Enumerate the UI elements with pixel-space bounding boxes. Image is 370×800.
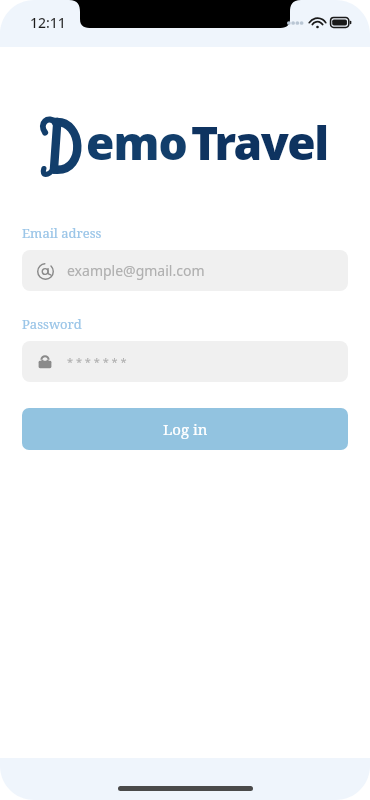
staticText: Password: [22, 315, 82, 333]
staticText: Travel: [191, 111, 328, 174]
button[interactable]: Password field: [22, 341, 348, 382]
staticText: Email adress: [22, 224, 102, 242]
button[interactable]: Log in: [22, 408, 348, 450]
staticText: * * * * * * *: [67, 354, 127, 369]
staticText: Log in: [163, 419, 208, 439]
staticText: 12:11: [30, 13, 66, 32]
staticText: example@gmail.com: [67, 261, 205, 280]
button[interactable]: Email address field: [22, 250, 348, 291]
staticText: emo: [86, 111, 187, 174]
